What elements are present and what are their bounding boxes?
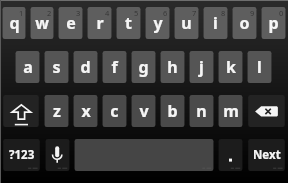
button[interactable]: a (13, 45, 42, 89)
button[interactable]: k (216, 45, 245, 89)
staticText: d (80, 56, 91, 78)
staticText: c (110, 100, 119, 122)
button[interactable]: Backspace (245, 89, 288, 133)
staticText: 7 (192, 8, 197, 18)
staticText: i (213, 12, 218, 34)
staticText: f (111, 56, 118, 78)
button[interactable]: c (100, 89, 129, 133)
button[interactable]: ?123 (0, 133, 43, 177)
staticText: b (167, 100, 178, 122)
button[interactable]: 9 (230, 1, 259, 45)
button[interactable]: Next (245, 133, 288, 177)
staticText: 0 (279, 8, 284, 18)
button[interactable]: m (216, 89, 245, 133)
staticText: Next (253, 147, 281, 163)
staticText: 6 (163, 8, 168, 18)
button[interactable]: 8 (201, 1, 230, 45)
staticText: 4 (105, 8, 110, 18)
button[interactable]: 4 (85, 1, 114, 45)
staticText: e (66, 12, 76, 34)
staticText: r (96, 12, 104, 34)
staticText: n (196, 100, 207, 122)
staticText: m (223, 100, 239, 122)
staticText: 8 (221, 8, 226, 18)
staticText: g (138, 56, 149, 78)
button[interactable]: l (245, 45, 274, 89)
staticText: x (81, 100, 91, 122)
staticText: 9 (250, 8, 255, 18)
staticText: w (35, 12, 49, 34)
staticText: t (125, 12, 132, 34)
button[interactable]: 1 (0, 1, 28, 45)
staticText: p (268, 12, 279, 34)
staticText: y (153, 12, 163, 34)
button[interactable]: v (129, 89, 158, 133)
staticText: ?123 (9, 147, 35, 163)
button[interactable]: g (129, 45, 158, 89)
staticText: q (9, 12, 20, 34)
button[interactable]: Space (72, 133, 216, 177)
button[interactable]: x (71, 89, 100, 133)
button[interactable]: n (187, 89, 216, 133)
staticText: 5 (134, 8, 139, 18)
button[interactable]: 6 (143, 1, 172, 45)
staticText: 2 (47, 8, 52, 18)
staticText: a (23, 56, 33, 78)
button[interactable]: Shift (0, 89, 42, 133)
button[interactable]: h (158, 45, 187, 89)
staticText: u (181, 12, 192, 34)
staticText: v (139, 100, 149, 122)
button[interactable]: f (100, 45, 129, 89)
staticText: k (226, 56, 236, 78)
button[interactable]: 3 (56, 1, 85, 45)
staticText: o (239, 12, 250, 34)
button[interactable]: 5 (114, 1, 143, 45)
staticText: l (257, 56, 262, 78)
button[interactable]: b (158, 89, 187, 133)
button[interactable]: 0 (259, 1, 288, 45)
staticText: j (199, 56, 204, 78)
staticText: 1 (19, 8, 24, 18)
button[interactable]: 2 (28, 1, 56, 45)
button[interactable]: d (71, 45, 100, 89)
button[interactable]: Voice input (43, 133, 72, 177)
button[interactable]: z (42, 89, 71, 133)
staticText: z (53, 100, 61, 122)
button[interactable]: j (187, 45, 216, 89)
button[interactable]: 7 (172, 1, 201, 45)
staticText: 3 (76, 8, 81, 18)
button[interactable]: s (42, 45, 71, 89)
staticText: s (52, 56, 61, 78)
staticText: h (167, 56, 178, 78)
button[interactable]: Period (216, 133, 245, 177)
